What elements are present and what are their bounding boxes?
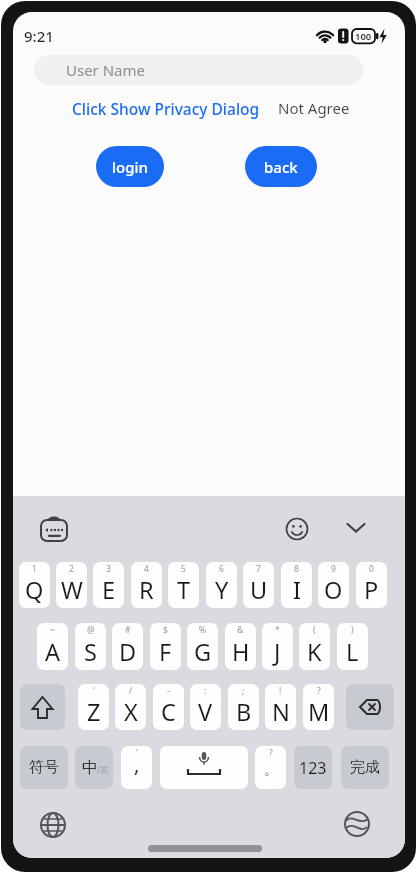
staticText: 100 (355, 30, 372, 43)
button[interactable]: & (225, 623, 256, 670)
button[interactable]: / (115, 684, 146, 730)
button[interactable]: ? (303, 684, 334, 730)
staticText: 6 (219, 563, 224, 575)
staticText: T (177, 574, 191, 606)
staticText: O (324, 574, 343, 606)
button[interactable]: ' (78, 684, 109, 730)
staticText: # (125, 624, 131, 636)
staticText: 3 (106, 563, 111, 575)
staticText: Not Agree (278, 98, 350, 118)
staticText: 。 (264, 761, 278, 779)
button[interactable]: @ (75, 623, 106, 670)
staticText: X (124, 696, 138, 728)
button[interactable]: 4 (131, 562, 162, 608)
button[interactable]: User Name (34, 55, 363, 85)
button[interactable]: - (153, 684, 184, 730)
staticText: $ (163, 624, 168, 636)
button[interactable]: ? (255, 746, 286, 789)
staticText: 123 (299, 757, 327, 779)
staticText: User Name (66, 60, 146, 80)
staticText: - (167, 685, 170, 697)
button[interactable]: 9 (318, 562, 349, 608)
staticText: A (45, 636, 61, 668)
staticText: G (194, 636, 212, 668)
button[interactable] (285, 517, 309, 541)
staticText: 完成 (350, 758, 380, 777)
button[interactable]: 0 (356, 562, 387, 608)
staticText: Click Show Privacy Dialog (72, 98, 260, 119)
button[interactable] (40, 812, 66, 838)
staticText: F (159, 636, 172, 668)
button[interactable]: # (112, 623, 143, 670)
staticText: 中 (82, 758, 98, 778)
staticText: 符号 (29, 758, 59, 777)
button[interactable]: ! (265, 684, 296, 730)
button[interactable]: login (96, 146, 164, 187)
button[interactable]: Click Show Privacy Dialog (72, 98, 260, 119)
staticText: , (134, 751, 140, 778)
staticText: ; (242, 685, 245, 697)
staticText: C (161, 696, 176, 728)
staticText: W (61, 574, 83, 606)
button[interactable]: % (187, 623, 218, 670)
staticText: M (308, 696, 330, 728)
button[interactable]: ) (337, 623, 368, 670)
button[interactable]: 6 (206, 562, 237, 608)
staticText: ~ (50, 624, 55, 636)
staticText: P (364, 574, 379, 606)
staticText: 0 (369, 563, 374, 575)
staticText: ' (136, 747, 138, 759)
staticText: 8 (294, 563, 299, 575)
button[interactable]: : (190, 684, 221, 730)
button[interactable]: 符号 (20, 746, 68, 789)
button[interactable]: back (245, 146, 317, 187)
staticText: ' (93, 685, 95, 697)
button[interactable]: 5 (168, 562, 199, 608)
staticText: U (250, 574, 268, 606)
button[interactable]: 8 (281, 562, 312, 608)
button[interactable]: 完成 (341, 746, 389, 789)
staticText: Z (87, 696, 101, 728)
button[interactable] (41, 516, 67, 542)
button[interactable]: ( (299, 623, 330, 670)
button[interactable]: 1 (19, 562, 50, 608)
staticText: & (237, 624, 244, 636)
staticText: V (198, 696, 213, 728)
button[interactable] (75, 746, 113, 789)
staticText: N (272, 696, 290, 728)
staticText: D (119, 636, 137, 668)
button[interactable]: 2 (56, 562, 87, 608)
staticText: 5 (181, 563, 186, 575)
staticText: ) (351, 624, 354, 636)
staticText: R (139, 574, 154, 606)
button[interactable]: * (262, 623, 293, 670)
staticText: ? (317, 685, 321, 697)
button[interactable]: ; (228, 684, 259, 730)
button[interactable]: Not Agree (278, 98, 350, 118)
button[interactable]: 123 (294, 746, 332, 789)
staticText: J (274, 636, 281, 668)
staticText: : (204, 685, 207, 697)
button[interactable] (160, 746, 248, 789)
button[interactable] (346, 684, 394, 730)
staticText: ? (269, 747, 273, 759)
button[interactable] (20, 684, 65, 730)
staticText: % (199, 624, 207, 636)
staticText: S (84, 636, 97, 668)
staticText: B (236, 696, 252, 728)
button[interactable] (346, 521, 366, 535)
button[interactable]: ~ (37, 623, 68, 670)
staticText: 1 (32, 563, 37, 575)
staticText: H (232, 636, 250, 668)
staticText: login (112, 157, 148, 177)
staticText: E (102, 574, 116, 606)
staticText: 2 (69, 563, 74, 575)
button[interactable]: $ (150, 623, 181, 670)
staticText: ! (279, 685, 282, 697)
button[interactable]: 7 (243, 562, 274, 608)
button[interactable]: ' (121, 746, 152, 789)
button[interactable] (344, 811, 370, 837)
button[interactable]: 3 (93, 562, 124, 608)
staticText: 9:21 (24, 26, 54, 46)
staticText: @ (87, 624, 95, 636)
